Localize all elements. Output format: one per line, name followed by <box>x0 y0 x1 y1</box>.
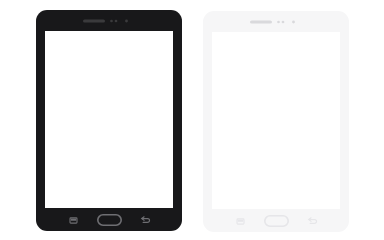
button[interactable]: Recent apps <box>60 210 86 230</box>
button[interactable]: Home <box>261 211 291 231</box>
button[interactable]: Black tablet <box>36 10 182 231</box>
button[interactable]: Home <box>94 210 124 230</box>
button[interactable]: Back <box>132 210 158 230</box>
button[interactable]: Recent apps <box>227 211 253 231</box>
button[interactable]: Back <box>299 211 325 231</box>
button[interactable]: White tablet <box>203 11 349 232</box>
